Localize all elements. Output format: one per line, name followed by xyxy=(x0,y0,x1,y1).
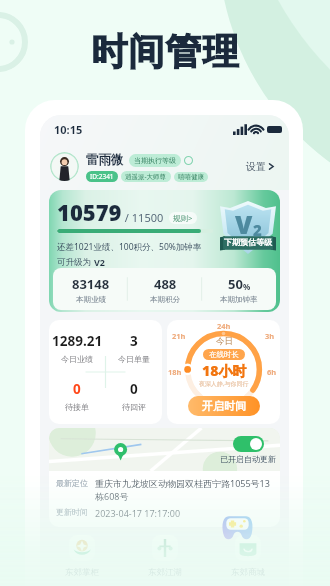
staticText: 本期业绩 xyxy=(76,295,106,304)
staticText: 在线时长 xyxy=(209,350,239,359)
staticText: 2023-04-17 17:17:00 xyxy=(95,507,181,519)
staticText: 83148 xyxy=(72,275,110,293)
staticText: 待回评 xyxy=(122,402,146,412)
button[interactable]: 东郊商城 xyxy=(206,535,289,586)
staticText: 今日 xyxy=(216,336,233,347)
button[interactable]: 东郊江湖 xyxy=(123,535,206,586)
staticText: 2 xyxy=(253,220,262,240)
staticText: 还差1021业绩、100积分、50%加钟率 xyxy=(57,241,202,253)
staticText: / 11500 xyxy=(122,210,164,225)
button[interactable]: 东郊掌柜 xyxy=(40,535,123,586)
staticText: V xyxy=(235,207,253,241)
staticText: 时间管理 xyxy=(91,29,239,74)
button[interactable]: 规则> xyxy=(169,212,197,224)
staticText: 东郊掌柜 xyxy=(65,567,99,578)
button[interactable]: 自动更新开关 xyxy=(233,436,264,452)
staticText: 东郊江湖 xyxy=(148,567,182,578)
staticText: 18h xyxy=(168,367,182,377)
staticText: 已开启自动更新 xyxy=(220,454,276,464)
staticText: 0 xyxy=(130,380,138,398)
staticText: 最新定位 xyxy=(56,478,88,488)
staticText: 设置 xyxy=(246,160,266,173)
button[interactable]: 设置 xyxy=(242,156,280,177)
staticText: 更新时间 xyxy=(56,507,88,517)
staticText: 50 xyxy=(228,275,243,293)
staticText: 21h xyxy=(172,331,186,341)
staticText: V2 xyxy=(94,256,105,268)
staticText: 可升级为 xyxy=(57,256,94,268)
staticText: 10579 xyxy=(57,197,122,227)
staticText: 规则> xyxy=(173,213,193,223)
staticText: 本期积分 xyxy=(150,295,180,304)
staticText: 1289.21 xyxy=(52,332,103,350)
staticText: 今日业绩 xyxy=(61,354,93,364)
staticText: 开启时间 xyxy=(202,399,246,413)
staticText: 雷雨微 xyxy=(86,152,124,168)
staticText: 10:15 xyxy=(54,122,83,137)
staticText: 逍遥派-大师尊 xyxy=(125,172,167,181)
staticText: 下期预估等级 xyxy=(220,237,276,247)
button[interactable]: 开启时间 xyxy=(188,396,260,416)
staticText: 3h xyxy=(265,331,275,341)
staticText: 夜深人静,与你同行 xyxy=(199,380,249,388)
staticText: 0 xyxy=(73,380,81,398)
staticText: 3 xyxy=(130,332,138,350)
staticText: 待接单 xyxy=(65,402,89,412)
staticText: 东郊商城 xyxy=(231,567,265,578)
staticText: 18小时 xyxy=(202,361,247,380)
staticText: 今日单量 xyxy=(118,354,150,364)
staticText: % xyxy=(243,281,251,292)
staticText: 6h xyxy=(267,367,277,377)
staticText: 当期执行等级 xyxy=(134,156,176,165)
staticText: 488 xyxy=(154,275,177,293)
staticText: 重庆市九龙坡区动物园双桂西宁路1055号13栋608号 xyxy=(95,477,278,503)
staticText: ID:2341 xyxy=(90,172,114,181)
staticText: 24h xyxy=(217,321,231,331)
button[interactable]: 游戏中心 xyxy=(222,514,253,541)
staticText: 嘻嘻健康 xyxy=(178,173,204,181)
staticText: 本期加钟率 xyxy=(220,295,258,304)
